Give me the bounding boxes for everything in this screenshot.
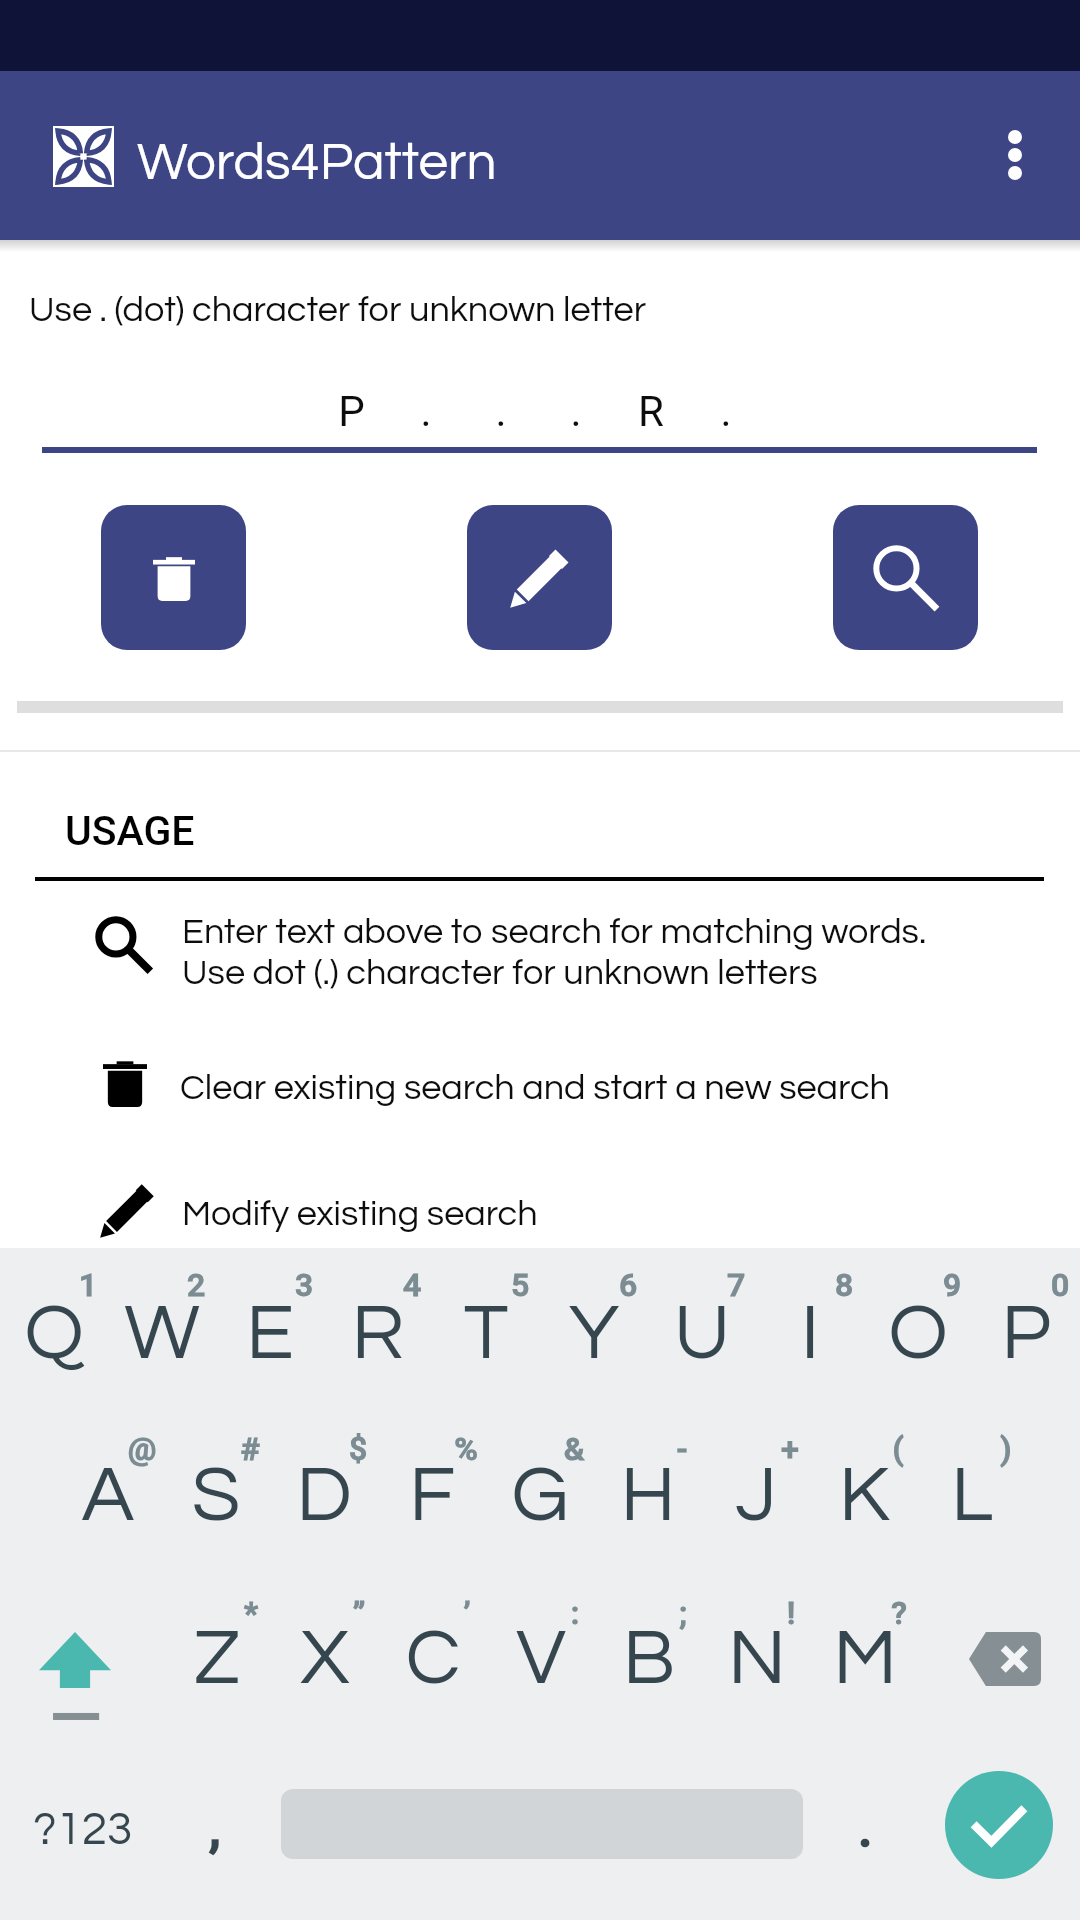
button[interactable] (648, 1248, 756, 1412)
button[interactable] (703, 1576, 811, 1740)
staticText: V (487, 1618, 595, 1699)
staticText: 9 (898, 1266, 1006, 1304)
button[interactable]: Edit (467, 505, 612, 650)
staticText: & (520, 1430, 628, 1468)
staticText: ?123 (33, 1806, 133, 1853)
button[interactable]: Search (833, 505, 978, 650)
staticText: F (378, 1455, 486, 1536)
staticText: Enter text above to search for matching … (182, 913, 927, 991)
button[interactable] (811, 1576, 919, 1740)
staticText: R (324, 1293, 432, 1374)
button[interactable] (379, 1576, 487, 1740)
staticText: P (338, 387, 365, 436)
staticText: 7 (682, 1266, 790, 1304)
staticText: J (702, 1455, 810, 1536)
button[interactable] (432, 1248, 540, 1412)
staticText: 5 (466, 1266, 574, 1304)
staticText: Clear existing search and start a new se… (180, 1069, 890, 1106)
button[interactable] (972, 1248, 1080, 1412)
staticText: S (162, 1455, 270, 1536)
button[interactable]: Clear (101, 505, 246, 650)
button[interactable] (163, 1576, 271, 1740)
staticText: L (918, 1455, 1026, 1536)
staticText: . (720, 387, 732, 436)
button[interactable] (864, 1248, 972, 1412)
button[interactable]: ?123 (0, 1744, 165, 1920)
staticText: Y (540, 1293, 648, 1374)
staticText: K (810, 1455, 918, 1536)
staticText: , (209, 1798, 221, 1859)
button[interactable] (271, 1576, 379, 1740)
staticText: ; (629, 1594, 737, 1632)
staticText: 4 (358, 1266, 466, 1304)
button[interactable] (594, 1412, 702, 1576)
button[interactable] (595, 1576, 703, 1740)
button[interactable]: Backspace (925, 1576, 1080, 1740)
button[interactable] (378, 1412, 486, 1576)
staticText: @ (88, 1430, 196, 1468)
staticText: D (270, 1455, 378, 1536)
staticText: % (412, 1430, 520, 1468)
button[interactable] (486, 1412, 594, 1576)
staticText: . (420, 387, 432, 436)
staticText: A (54, 1455, 162, 1536)
staticText: . (495, 387, 507, 436)
staticText: ) (952, 1430, 1060, 1468)
staticText: G (486, 1455, 594, 1536)
staticText: H (594, 1455, 702, 1536)
button[interactable] (324, 1248, 432, 1412)
button[interactable] (162, 1412, 270, 1576)
staticText: * (197, 1594, 305, 1632)
staticText: - (628, 1430, 736, 1468)
button[interactable]: . (815, 1744, 915, 1920)
staticText: . (570, 387, 582, 436)
button[interactable] (216, 1248, 324, 1412)
staticText: : (521, 1594, 629, 1632)
button[interactable] (108, 1248, 216, 1412)
staticText: Words4Pattern (137, 136, 497, 191)
button[interactable] (810, 1412, 918, 1576)
button[interactable]: More options (967, 107, 1063, 203)
button[interactable]: Shift (0, 1576, 160, 1740)
staticText: M (811, 1618, 919, 1699)
staticText: B (595, 1618, 703, 1699)
staticText: Q (0, 1293, 108, 1374)
staticText: ’ (413, 1594, 521, 1632)
staticText: P (972, 1293, 1080, 1374)
staticText: C (379, 1618, 487, 1699)
staticText: + (736, 1430, 844, 1468)
button[interactable] (756, 1248, 864, 1412)
button[interactable] (540, 1248, 648, 1412)
staticText: X (271, 1618, 379, 1699)
staticText: U (648, 1293, 756, 1374)
button[interactable] (702, 1412, 810, 1576)
staticText: ” (305, 1594, 413, 1632)
staticText: 0 (1006, 1266, 1080, 1304)
staticText: Z (163, 1618, 271, 1699)
button[interactable] (0, 1248, 108, 1412)
staticText: Use . (dot) character for unknown letter (29, 291, 647, 328)
staticText: E (216, 1293, 324, 1374)
staticText: # (196, 1430, 304, 1468)
staticText: W (108, 1293, 216, 1374)
staticText: T (432, 1293, 540, 1374)
button[interactable] (54, 1412, 162, 1576)
staticText: ! (737, 1594, 845, 1632)
staticText: $ (304, 1430, 412, 1468)
staticText: ? (845, 1594, 953, 1632)
button[interactable]: , (165, 1744, 265, 1920)
staticText: USAGE (65, 807, 195, 855)
staticText: . (858, 1798, 873, 1859)
staticText: 8 (790, 1266, 898, 1304)
staticText: I (756, 1293, 864, 1374)
staticText: 6 (574, 1266, 682, 1304)
staticText: ( (844, 1430, 952, 1468)
button[interactable] (918, 1412, 1026, 1576)
button[interactable] (270, 1412, 378, 1576)
staticText: O (864, 1293, 972, 1374)
staticText: 3 (250, 1266, 358, 1304)
button[interactable] (487, 1576, 595, 1740)
staticText: 2 (142, 1266, 250, 1304)
button[interactable]: Enter (945, 1771, 1053, 1879)
